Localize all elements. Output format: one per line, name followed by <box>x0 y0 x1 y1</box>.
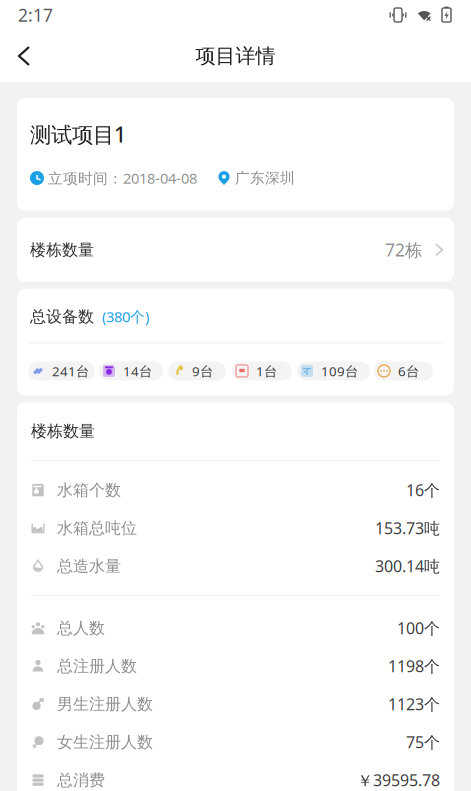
staticText: 水箱个数 <box>57 480 121 500</box>
staticText: 72栋 <box>385 238 422 261</box>
button[interactable]: 6台 <box>374 361 433 380</box>
staticText: 153.73吨 <box>375 517 440 539</box>
staticText: 水箱总吨位 <box>57 518 137 538</box>
staticText: 75个 <box>406 731 440 753</box>
button[interactable]: 241台 <box>28 361 95 380</box>
staticText: 1台 <box>256 362 277 380</box>
staticText: 总人数 <box>57 618 105 638</box>
staticText: 楼栋数量 <box>31 421 95 441</box>
staticText: 9台 <box>192 362 213 380</box>
staticText: 总设备数 <box>30 307 94 326</box>
staticText: 总注册人数 <box>57 656 137 676</box>
staticText: 300.14吨 <box>375 555 440 577</box>
staticText: 6台 <box>398 362 419 380</box>
button[interactable]: 9台 <box>168 361 226 380</box>
button[interactable]: 1台 <box>232 361 292 380</box>
button[interactable]: 109台 <box>297 361 370 380</box>
staticText: 立项时间：2018-04-08 <box>48 168 197 188</box>
staticText: 2:17 <box>18 3 53 26</box>
staticText: 1198个 <box>388 655 440 677</box>
staticText: 109台 <box>321 362 358 380</box>
staticText: (380个) <box>94 307 149 326</box>
staticText: 241台 <box>52 362 89 380</box>
staticText: 男生注册人数 <box>57 694 153 714</box>
staticText: 楼栋数量 <box>30 240 94 260</box>
staticText: 1123个 <box>388 693 440 715</box>
staticText: 测试项目1 <box>30 120 126 148</box>
staticText: 14台 <box>123 362 152 380</box>
staticText: 总造水量 <box>57 556 121 576</box>
staticText: 总消费 <box>57 770 105 790</box>
staticText: ￥39595.78 <box>357 769 440 791</box>
staticText: 女生注册人数 <box>57 732 153 752</box>
staticText: 100个 <box>397 617 440 639</box>
button[interactable]: 14台 <box>99 361 163 380</box>
staticText: 项目详情 <box>195 44 275 68</box>
button[interactable]: Back <box>0 33 48 79</box>
button[interactable]: 楼栋数量 <box>0 211 471 282</box>
staticText: 广东深圳 <box>235 169 295 187</box>
staticText: 16个 <box>406 479 440 501</box>
